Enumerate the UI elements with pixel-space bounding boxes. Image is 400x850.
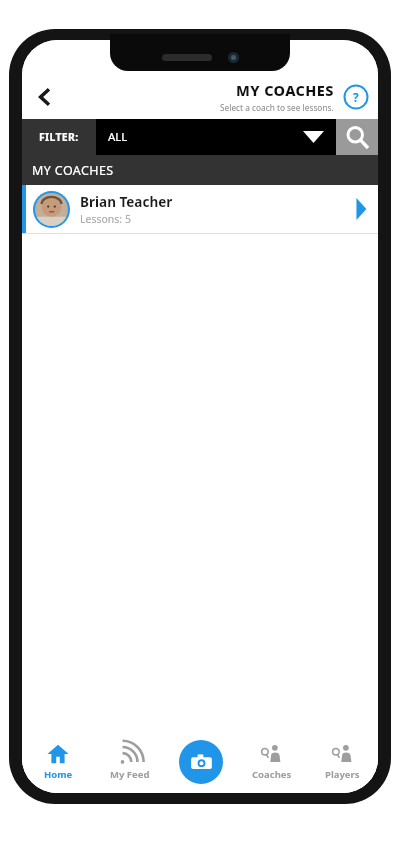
button[interactable]: Coaches	[236, 731, 307, 793]
staticText: MY COACHES	[236, 80, 334, 100]
button[interactable]: Help	[343, 84, 369, 110]
staticText: Players	[325, 768, 360, 781]
button[interactable]: Home	[22, 731, 94, 793]
staticText: ?	[353, 89, 359, 105]
button[interactable]: ALL	[96, 119, 336, 155]
staticText: Select a coach to see lessons.	[220, 102, 334, 113]
staticText: MY COACHES	[32, 162, 114, 179]
staticText: Brian Teacher	[80, 193, 173, 211]
button[interactable]: Back	[25, 77, 65, 117]
button[interactable]: Brian Teacher	[22, 185, 378, 233]
staticText: Lessons: 5	[80, 212, 131, 226]
staticText: Home	[44, 768, 73, 781]
button[interactable]: Camera	[179, 740, 223, 784]
staticText: ALL	[108, 129, 128, 145]
staticText: Coaches	[252, 768, 292, 781]
staticText: FILTER:	[39, 130, 79, 144]
button[interactable]: My Feed	[94, 731, 165, 793]
button[interactable]: Search	[336, 119, 378, 155]
staticText: My Feed	[110, 768, 150, 781]
button[interactable]: Players	[307, 731, 378, 793]
